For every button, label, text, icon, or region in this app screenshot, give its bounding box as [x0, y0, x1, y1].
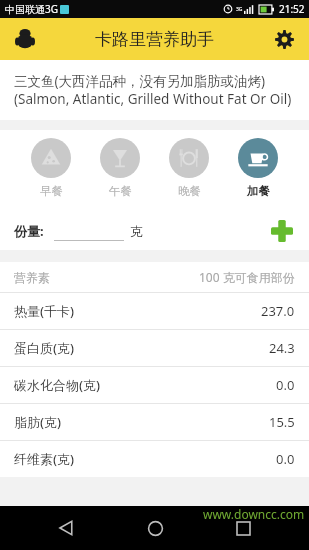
staticText: 晚餐 — [178, 184, 201, 198]
staticText: 午餐 — [109, 184, 132, 198]
staticText: 中国联通3G — [5, 2, 58, 16]
staticText: (Salmon, Atlantic, Grilled Without Fat O… — [14, 90, 292, 108]
button[interactable]: 加餐 — [232, 138, 284, 198]
button[interactable] — [54, 221, 124, 241]
button[interactable]: 碳水化合物(克) — [0, 367, 309, 403]
button[interactable]: 纤维素(克) — [0, 441, 309, 477]
staticText: 21:52 — [279, 2, 305, 16]
button[interactable]: Add — [267, 216, 297, 246]
button[interactable]: 早餐 — [25, 138, 77, 198]
staticText: 份量: — [14, 222, 44, 240]
staticText: 100 克可食用部份 — [199, 269, 295, 285]
staticText: 蛋白质(克) — [14, 339, 75, 357]
staticText: 3G — [236, 6, 243, 13]
staticText: 15.5 — [269, 413, 295, 431]
staticText: 237.0 — [261, 302, 295, 320]
button[interactable]: Settings — [269, 24, 299, 54]
button[interactable]: 脂肪(克) — [0, 404, 309, 440]
button[interactable]: 营养素 — [0, 262, 309, 292]
button[interactable]: 午餐 — [94, 138, 146, 198]
button[interactable]: Recents — [221, 506, 265, 550]
staticText: 热量(千卡) — [14, 302, 75, 320]
staticText: 碳水化合物(克) — [14, 376, 101, 394]
staticText: 卡路里营养助手 — [95, 29, 214, 50]
staticText: 24.3 — [269, 339, 295, 357]
staticText: 加餐 — [247, 184, 270, 198]
staticText: www.downcc.com — [203, 506, 305, 522]
button[interactable]: 晚餐 — [163, 138, 215, 198]
button[interactable]: 蛋白质(克) — [0, 330, 309, 366]
staticText: 营养素 — [14, 270, 50, 285]
staticText: 纤维素(克) — [14, 450, 75, 468]
button[interactable]: Logo — [10, 24, 40, 54]
staticText: 克 — [130, 223, 143, 239]
button[interactable]: Home — [133, 506, 177, 550]
staticText: 0.0 — [276, 450, 295, 468]
staticText: 早餐 — [40, 184, 63, 198]
button[interactable]: Back — [44, 506, 88, 550]
staticText: 脂肪(克) — [14, 413, 62, 431]
staticText: 三文鱼(大西洋品种，没有另加脂肪或油烤) — [14, 72, 266, 90]
button[interactable]: 热量(千卡) — [0, 293, 309, 329]
staticText: 0.0 — [276, 376, 295, 394]
